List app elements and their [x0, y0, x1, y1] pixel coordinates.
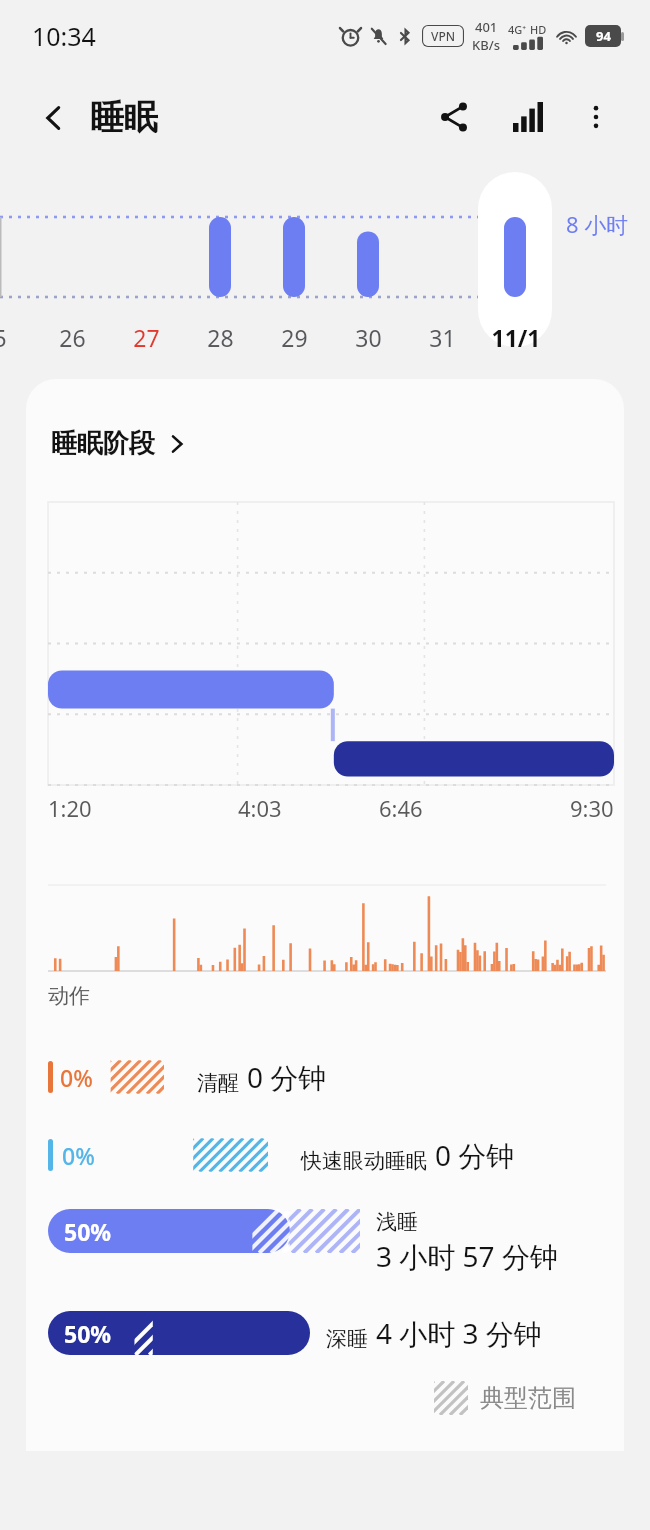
- staticText: 30: [355, 322, 382, 353]
- button[interactable]: 30: [328, 317, 408, 357]
- staticText: 4 小时 3 分钟: [376, 1314, 542, 1352]
- button[interactable]: 11/1: [476, 317, 556, 357]
- staticText: 28: [207, 322, 234, 353]
- staticText: 3 小时 57 分钟: [376, 1237, 558, 1275]
- button[interactable]: Share: [426, 89, 482, 145]
- staticText: KB/s: [472, 36, 501, 54]
- staticText: 9:30: [570, 793, 614, 823]
- staticText: 0%: [60, 1062, 93, 1093]
- staticText: 8 小时: [566, 209, 629, 239]
- button[interactable]: 5: [0, 317, 40, 357]
- staticText: 11/1: [491, 322, 541, 353]
- staticText: VPN: [431, 28, 456, 44]
- staticText: 26: [59, 322, 86, 353]
- staticText: 31: [429, 322, 456, 353]
- button[interactable]: Back: [34, 96, 158, 139]
- other: Back: [34, 98, 74, 138]
- staticText: 睡眠阶段: [51, 427, 155, 460]
- staticText: 1:20: [48, 793, 92, 823]
- staticText: 27: [133, 322, 160, 353]
- button[interactable]: 31: [402, 317, 482, 357]
- staticText: HD: [530, 22, 547, 37]
- staticText: 0 分钟: [435, 1136, 515, 1174]
- button[interactable]: 0%: [48, 1057, 602, 1097]
- staticText: 快速眼动睡眠: [301, 1148, 427, 1174]
- staticText: 29: [281, 322, 308, 353]
- button[interactable]: 0%: [48, 1135, 602, 1175]
- staticText: 0 分钟: [247, 1058, 327, 1096]
- button[interactable]: 28: [180, 317, 260, 357]
- button[interactable]: 50%: [48, 1209, 602, 1275]
- button[interactable]: Statistics: [500, 89, 556, 145]
- button[interactable]: 50%: [48, 1311, 602, 1355]
- button[interactable]: 26: [32, 317, 112, 357]
- staticText: 5: [0, 322, 7, 353]
- staticText: 0%: [62, 1140, 95, 1171]
- staticText: 94: [596, 27, 611, 45]
- staticText: 动作: [48, 983, 90, 1009]
- button[interactable]: 29: [254, 317, 334, 357]
- staticText: 浅睡: [376, 1209, 418, 1235]
- staticText: 50%: [64, 1318, 112, 1349]
- staticText: 4:03: [238, 793, 282, 823]
- staticText: 4G⁺: [508, 22, 527, 37]
- button[interactable]: More options: [568, 89, 624, 145]
- staticText: 清醒: [197, 1070, 239, 1096]
- button[interactable]: 睡眠阶段: [51, 427, 187, 460]
- staticText: 睡眠: [90, 96, 158, 139]
- staticText: 深睡: [326, 1326, 368, 1352]
- button[interactable]: 27: [106, 317, 186, 357]
- staticText: 6:46: [379, 793, 423, 823]
- staticText: 50%: [64, 1216, 112, 1247]
- staticText: 典型范围: [480, 1383, 576, 1413]
- button[interactable]: [478, 172, 552, 347]
- staticText: 401: [475, 18, 498, 36]
- staticText: 10:34: [32, 19, 96, 53]
